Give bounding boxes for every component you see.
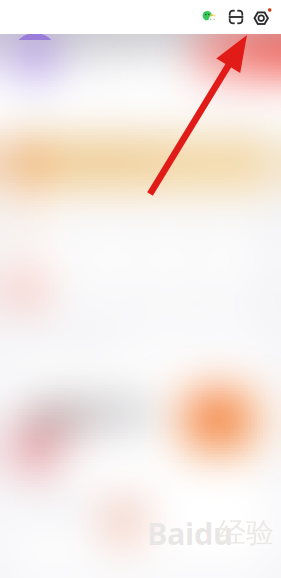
- button[interactable]: WeChat: [197, 2, 223, 32]
- button[interactable]: Settings: [249, 2, 275, 32]
- staticText: 经验: [218, 516, 274, 550]
- staticText: Baidu: [147, 513, 233, 553]
- button[interactable]: Scan: [223, 2, 249, 32]
